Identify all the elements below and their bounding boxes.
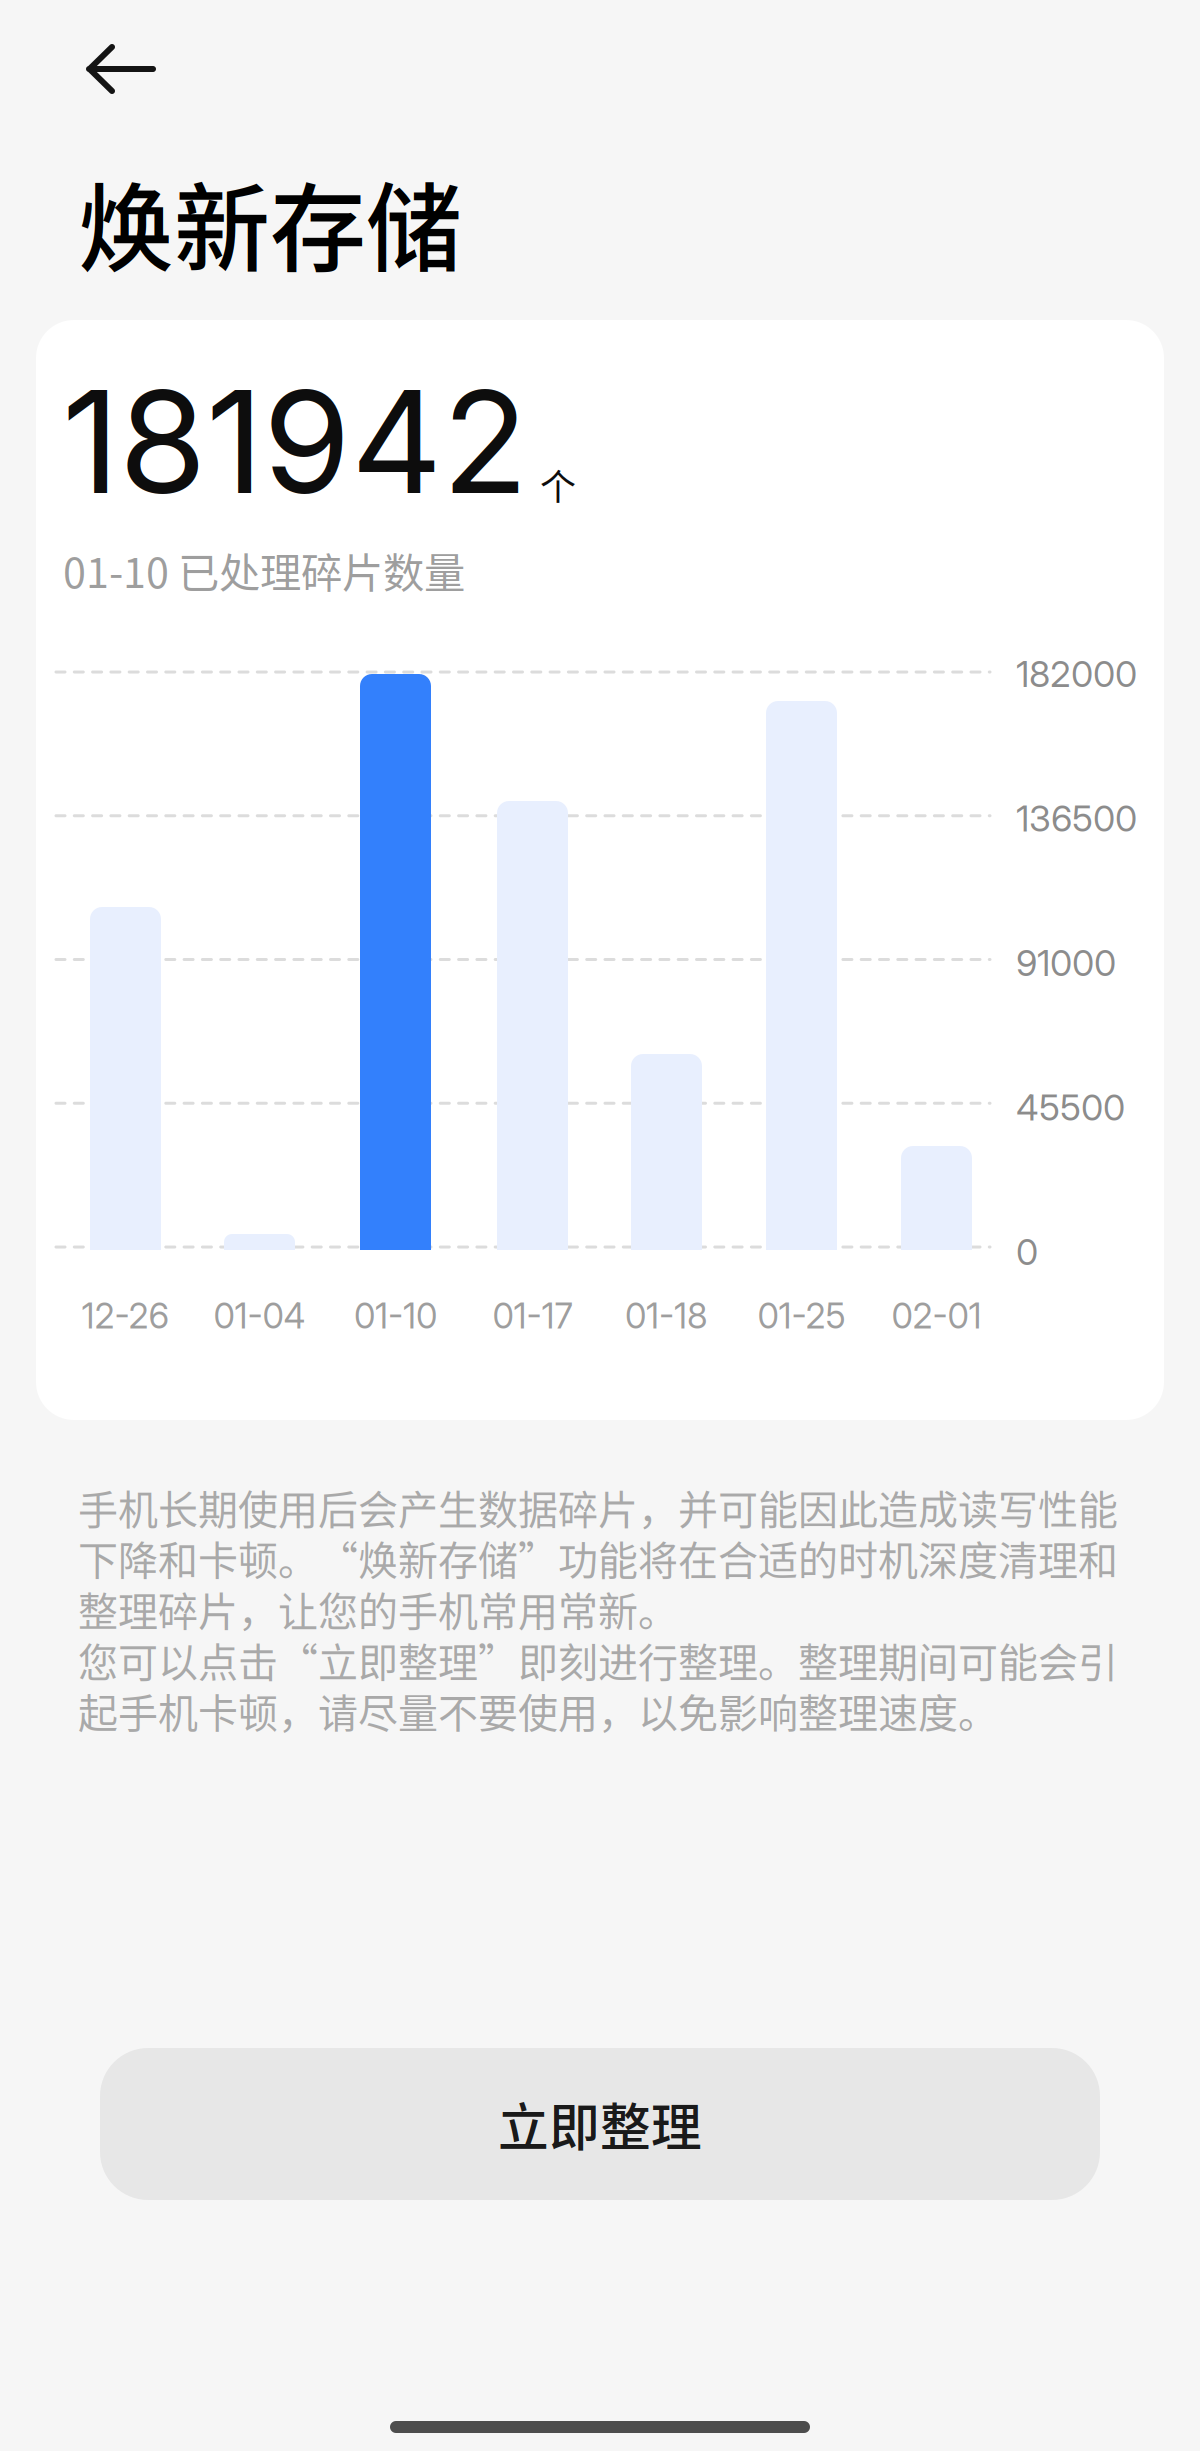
staticText: 焕新存储 [78,152,462,291]
staticText: 01-25 [757,1295,845,1337]
button[interactable]: 立即整理 [100,2048,1100,2200]
staticText: 02-01 [891,1295,981,1337]
staticText: 181942 [62,356,528,527]
staticText: 01-04 [213,1295,305,1337]
staticText: 01-17 [492,1295,572,1337]
staticText: 12-26 [81,1295,169,1337]
button[interactable]: Back [67,26,174,112]
staticText: 136500 [1016,797,1137,840]
staticText: 个 [540,459,576,511]
staticText: 01-10 已处理碎片数量 [63,540,465,600]
staticText: 182000 [1016,652,1137,696]
staticText: 01-18 [625,1295,708,1337]
staticText: 手机长期使用后会产生数据碎片，并可能因此造成读写性能下降和卡顿。“焕新存储”功能… [78,1478,1118,1740]
staticText: 91000 [1016,941,1116,985]
staticText: 01-10 [354,1295,437,1337]
staticText: 0 [1016,1230,1038,1274]
staticText: 立即整理 [498,2087,702,2161]
staticText: 45500 [1016,1086,1125,1129]
